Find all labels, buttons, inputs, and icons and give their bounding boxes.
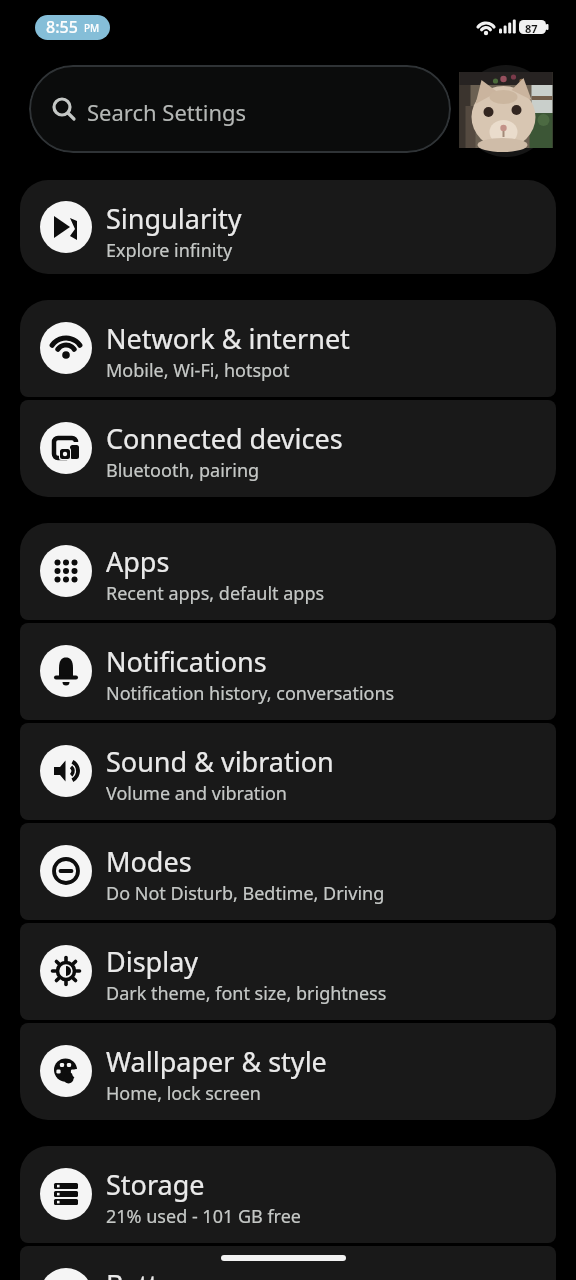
staticText: Bluetooth, pairing bbox=[106, 458, 260, 483]
staticText: Battery bbox=[106, 1266, 199, 1280]
staticText: Singularity bbox=[106, 200, 242, 237]
staticText: Explore infinity bbox=[106, 238, 233, 263]
staticText: Home, lock screen bbox=[106, 1081, 261, 1106]
staticText: Display bbox=[106, 943, 199, 980]
staticText: Search Settings bbox=[87, 97, 247, 127]
staticText: Notifications bbox=[106, 643, 267, 680]
staticText: Do Not Disturb, Bedtime, Driving bbox=[106, 881, 385, 906]
staticText: Notification history, conversations bbox=[106, 681, 395, 706]
staticText: 8:55 bbox=[46, 16, 78, 38]
staticText: Connected devices bbox=[106, 420, 343, 457]
staticText: Volume and vibration bbox=[106, 781, 287, 806]
staticText: Dark theme, font size, brightness bbox=[106, 981, 387, 1006]
staticText: Storage bbox=[106, 1166, 205, 1203]
staticText: Recent apps, default apps bbox=[106, 581, 325, 606]
staticText: 87 bbox=[525, 21, 538, 36]
staticText: Apps bbox=[106, 543, 170, 580]
staticText: Mobile, Wi-Fi, hotspot bbox=[106, 358, 290, 383]
staticText: PM bbox=[84, 21, 100, 35]
staticText: Network & internet bbox=[106, 320, 350, 357]
staticText: Sound & vibration bbox=[106, 743, 334, 780]
staticText: Wallpaper & style bbox=[106, 1043, 327, 1080]
staticText: Modes bbox=[106, 843, 192, 880]
staticText: 21% used - 101 GB free bbox=[106, 1204, 301, 1229]
